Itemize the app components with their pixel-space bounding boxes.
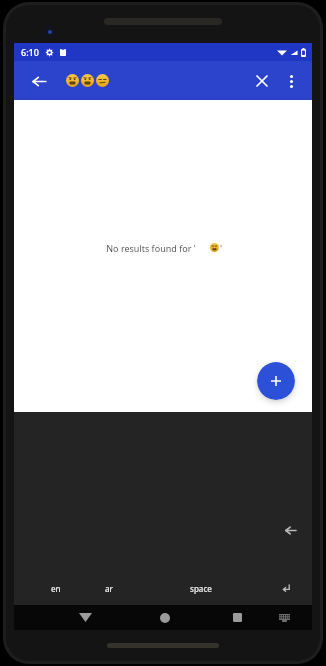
staticText: 6:10 — [21, 46, 39, 58]
button[interactable]: en — [24, 571, 88, 605]
button[interactable]: Recents — [224, 605, 250, 630]
staticText: en — [51, 583, 61, 594]
staticText: ' — [220, 242, 223, 254]
button[interactable]: Enter — [247, 571, 312, 605]
button[interactable]: Clear search — [248, 67, 276, 95]
button[interactable]: Home — [152, 605, 178, 630]
button[interactable]: Switch keyboard — [273, 607, 295, 629]
staticText: ar — [105, 583, 113, 594]
button[interactable] — [66, 74, 109, 87]
button[interactable]: space — [149, 571, 253, 605]
button[interactable]: Hide keyboard — [72, 605, 98, 630]
button[interactable]: Back — [26, 68, 52, 94]
button[interactable]: ar — [76, 571, 141, 605]
button[interactable]: More options — [278, 68, 304, 94]
button[interactable]: Backspace — [278, 520, 300, 540]
staticText: space — [190, 583, 212, 594]
staticText: No results found for ' — [106, 242, 196, 254]
button[interactable]: Add — [257, 362, 295, 400]
